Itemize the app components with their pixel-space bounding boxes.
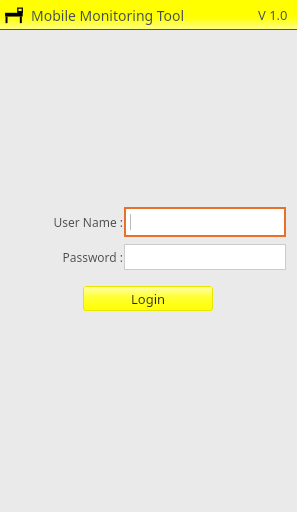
button[interactable]: Login bbox=[83, 286, 213, 311]
staticText: V 1.0 bbox=[258, 6, 288, 24]
button[interactable] bbox=[124, 244, 286, 270]
other: Mobile Monitoring Tool icon bbox=[4, 4, 26, 26]
button[interactable] bbox=[124, 207, 286, 237]
staticText: Password : bbox=[62, 249, 123, 265]
staticText: Login bbox=[131, 290, 166, 308]
staticText: User Name : bbox=[53, 214, 123, 230]
staticText: Mobile Monitoring Tool bbox=[31, 6, 185, 25]
